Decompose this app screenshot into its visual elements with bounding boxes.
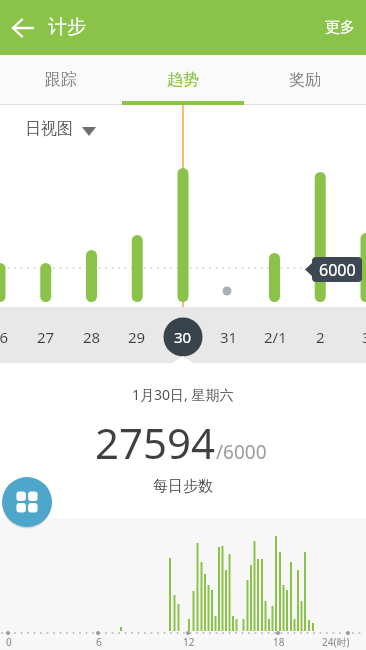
staticText: 28 — [83, 327, 101, 347]
staticText: 6000 — [319, 259, 356, 281]
staticText: /6000 — [216, 439, 267, 465]
staticText: 趋势 — [167, 70, 199, 90]
staticText: 0 — [6, 635, 12, 649]
staticText: 2 — [316, 327, 325, 347]
staticText: 6 — [96, 635, 102, 649]
staticText: 27 — [37, 327, 55, 347]
staticText: 1月30日, 星期六 — [132, 385, 234, 404]
staticText: 计步 — [48, 15, 86, 39]
staticText: 31 — [220, 327, 238, 347]
staticText: 27594 — [95, 414, 216, 471]
staticText: 2/1 — [264, 327, 287, 347]
button[interactable]: 30 — [153, 325, 213, 349]
button[interactable]: 28 — [62, 325, 122, 349]
button[interactable]: 更多 — [325, 18, 355, 37]
staticText: 29 — [128, 327, 146, 347]
staticText: 26 — [0, 327, 9, 347]
staticText: 18 — [273, 635, 285, 649]
button[interactable]: 日视图 — [25, 119, 73, 139]
button[interactable]: 趋势 — [122, 55, 244, 105]
button[interactable]: 2/1 — [245, 325, 305, 349]
staticText: 30 — [174, 327, 192, 347]
button[interactable] — [6, 11, 40, 45]
button[interactable]: 27 — [16, 325, 76, 349]
staticText: 日视图 — [25, 119, 73, 139]
staticText: 每日步数 — [153, 477, 213, 496]
button[interactable]: 跟踪 — [0, 55, 122, 105]
staticText: 跟踪 — [45, 70, 77, 90]
staticText: 奖励 — [289, 70, 321, 90]
staticText: 12 — [183, 635, 195, 649]
button[interactable]: 26 — [0, 325, 30, 349]
staticText: 3 — [362, 327, 366, 347]
staticText: 24(时) — [322, 635, 350, 649]
button[interactable]: 3 — [336, 325, 366, 349]
button[interactable]: 2 — [290, 325, 350, 349]
staticText: 更多 — [325, 18, 355, 37]
button[interactable]: 31 — [199, 325, 259, 349]
button[interactable] — [2, 477, 52, 527]
button[interactable]: 奖励 — [244, 55, 366, 105]
button[interactable]: 29 — [107, 325, 167, 349]
